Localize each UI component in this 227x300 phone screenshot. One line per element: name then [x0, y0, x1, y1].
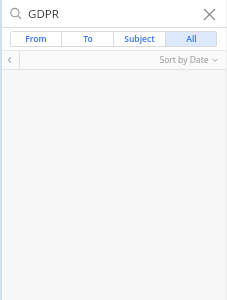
button[interactable]: Subject	[114, 31, 165, 47]
button[interactable]: Back	[0, 51, 19, 69]
staticText: Subject	[124, 33, 155, 45]
staticText: All	[186, 33, 197, 45]
button[interactable]: All	[166, 31, 217, 47]
button[interactable]: From	[10, 31, 61, 47]
button[interactable]: Sort by Date	[156, 51, 221, 69]
staticText: To	[83, 33, 93, 45]
other: Search	[9, 7, 23, 21]
staticText: GDPR	[28, 6, 59, 22]
button[interactable]: To	[62, 31, 113, 47]
button[interactable]: Clear search	[197, 2, 221, 26]
staticText: From	[25, 33, 47, 45]
staticText: Sort by Date	[159, 54, 209, 66]
